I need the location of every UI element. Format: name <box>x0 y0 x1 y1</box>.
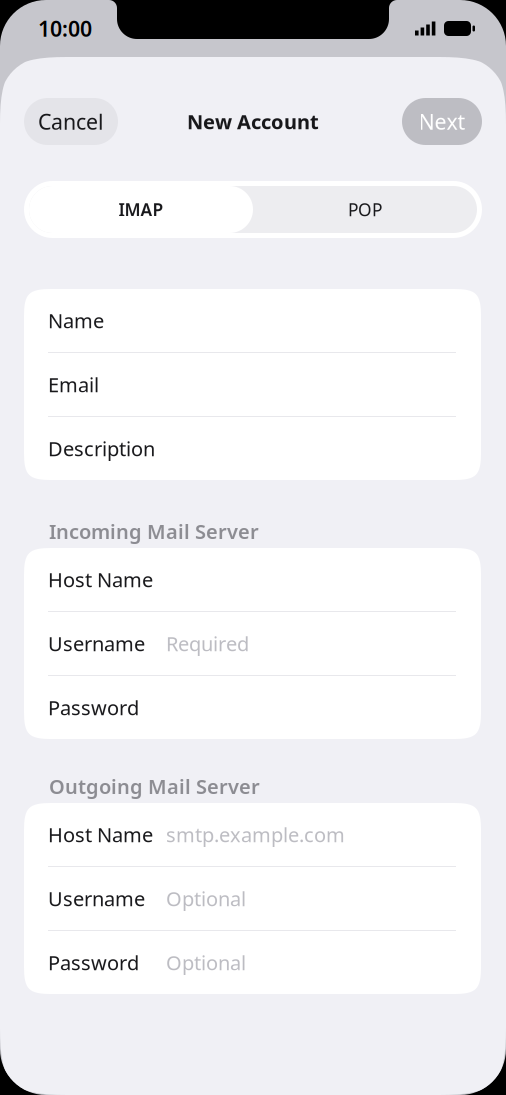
staticText: smtp.example.com <box>166 821 345 848</box>
staticText: Name <box>48 307 104 334</box>
button[interactable]: Username <box>24 612 481 675</box>
button[interactable]: Cancel <box>24 98 118 145</box>
staticText: Password <box>48 949 139 976</box>
staticText: New Account <box>187 108 319 135</box>
staticText: Optional <box>166 949 246 976</box>
button[interactable]: Name <box>24 289 481 352</box>
staticText: Host Name <box>48 821 153 848</box>
staticText: POP <box>348 198 382 221</box>
staticText: IMAP <box>118 198 163 221</box>
staticText: Username <box>48 630 145 657</box>
staticText: Password <box>48 694 139 721</box>
button[interactable]: Password <box>24 931 481 994</box>
staticText: Outgoing Mail Server <box>49 773 260 800</box>
button[interactable]: Description <box>24 417 481 480</box>
button[interactable]: Password <box>24 676 481 739</box>
button[interactable]: Next <box>402 98 482 145</box>
button[interactable]: Username <box>24 867 481 930</box>
staticText: Required <box>166 630 249 657</box>
staticText: Optional <box>166 885 246 912</box>
staticText: Incoming Mail Server <box>49 518 259 545</box>
staticText: 10:00 <box>38 14 92 43</box>
button[interactable]: Host Name <box>24 803 481 866</box>
staticText: Username <box>48 885 145 912</box>
staticText: Host Name <box>48 566 153 593</box>
staticText: Email <box>48 371 99 398</box>
button[interactable]: IMAP <box>29 186 253 233</box>
staticText: Description <box>48 435 155 462</box>
staticText: Next <box>418 107 465 136</box>
staticText: Cancel <box>38 107 104 136</box>
button[interactable]: Host Name <box>24 548 481 611</box>
button[interactable]: POP <box>253 186 477 233</box>
button[interactable]: Email <box>24 353 481 416</box>
